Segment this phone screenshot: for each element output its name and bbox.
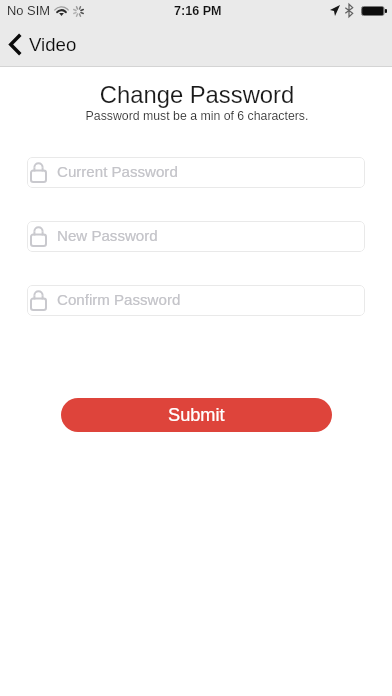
button[interactable]: Submit xyxy=(61,398,332,432)
staticText: New Password xyxy=(57,227,158,244)
button[interactable]: Video xyxy=(0,21,87,67)
staticText: Submit xyxy=(168,405,225,425)
staticText: Current Password xyxy=(57,163,178,180)
button[interactable]: New Password xyxy=(27,221,365,252)
staticText: Password must be a min of 6 characters. xyxy=(1,109,392,123)
staticText: Video xyxy=(29,34,77,55)
staticText: Change Password xyxy=(1,81,392,108)
button[interactable]: Confirm Password xyxy=(27,285,365,316)
staticText: No SIM xyxy=(7,3,50,17)
button[interactable]: Current Password xyxy=(27,157,365,188)
staticText: Confirm Password xyxy=(57,291,181,308)
staticText: 7:16 PM xyxy=(174,4,222,18)
